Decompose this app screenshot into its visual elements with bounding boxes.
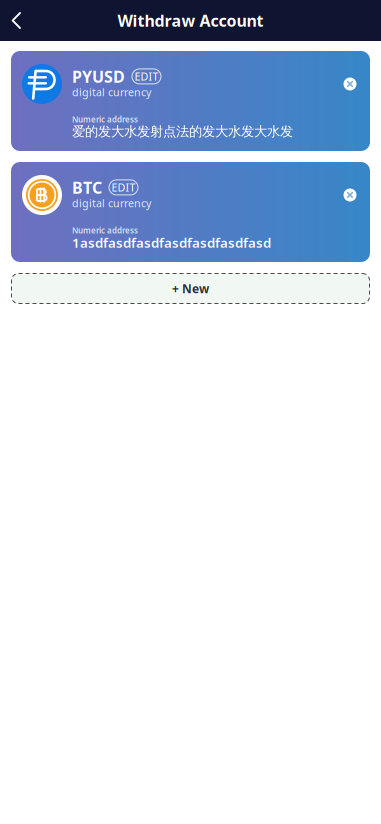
staticText: BTC <box>72 177 102 198</box>
button[interactable]: Back <box>0 0 33 41</box>
staticText: EDIT <box>134 69 158 83</box>
staticText: + New <box>172 280 209 296</box>
staticText: EDIT <box>111 180 135 194</box>
staticText: Withdraw Account <box>117 10 263 31</box>
staticText: 1asdfasdfasdfasdfasdfasdfasd <box>72 234 271 251</box>
button[interactable]: Remove <box>339 73 361 95</box>
button[interactable]: + New <box>11 273 370 304</box>
staticText: 爱的发大水发射点法的发大水发大水发 <box>72 123 293 140</box>
button[interactable]: EDIT <box>109 180 138 195</box>
button[interactable]: EDIT <box>132 69 161 84</box>
button[interactable]: BTC <box>11 162 370 262</box>
staticText: Numeric address <box>72 114 138 125</box>
button[interactable]: PYUSD <box>11 51 370 151</box>
staticText: digital currency <box>72 196 151 210</box>
staticText: Numeric address <box>72 225 138 236</box>
staticText: digital currency <box>72 85 151 99</box>
button[interactable]: Remove <box>339 184 361 206</box>
staticText: PYUSD <box>72 66 125 87</box>
